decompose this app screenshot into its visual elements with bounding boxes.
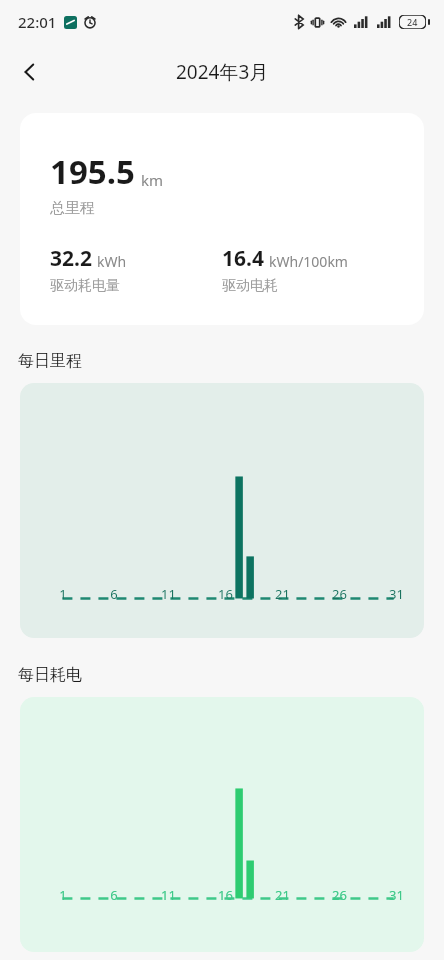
staticText: 6 [110, 886, 118, 904]
staticText: 总里程 [50, 199, 95, 218]
staticText: 每日耗电 [18, 665, 82, 685]
staticText: 11 [161, 886, 176, 904]
staticText: 驱动电耗 [222, 277, 278, 295]
staticText: km [141, 170, 164, 190]
staticText: 16.4 [222, 244, 264, 273]
staticText: 1 [59, 886, 67, 904]
staticText: kWh [97, 252, 127, 271]
staticText: 26 [332, 886, 347, 904]
button[interactable]: 1 [20, 383, 424, 638]
staticText: 11 [161, 585, 176, 603]
staticText: 驱动耗电量 [50, 277, 120, 295]
staticText: 每日里程 [18, 351, 82, 371]
staticText: 22:01 [18, 12, 57, 32]
staticText: 26 [332, 585, 347, 603]
staticText: 195.5 [50, 149, 135, 194]
staticText: 16 [218, 886, 233, 904]
staticText: 21 [275, 886, 290, 904]
button[interactable]: Back [8, 50, 52, 94]
button[interactable]: 1 [20, 697, 424, 952]
button[interactable]: 195.5 [20, 113, 424, 325]
staticText: 1 [59, 585, 67, 603]
staticText: 32.2 [50, 244, 92, 273]
staticText: 16 [218, 585, 233, 603]
staticText: 31 [389, 886, 404, 904]
staticText: kWh/100km [269, 252, 348, 271]
staticText: 2024年3月 [176, 59, 269, 85]
staticText: 31 [389, 585, 404, 603]
staticText: 21 [275, 585, 290, 603]
staticText: 6 [110, 585, 118, 603]
staticText: 24 [407, 16, 418, 28]
